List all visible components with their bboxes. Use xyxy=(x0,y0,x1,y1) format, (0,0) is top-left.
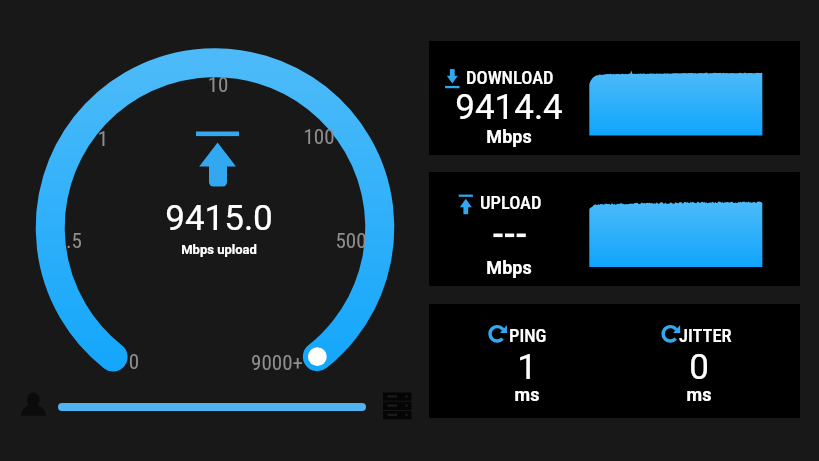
staticText: Mbps xyxy=(429,126,589,147)
staticText: 1 xyxy=(467,347,587,388)
staticText: ms xyxy=(639,384,759,405)
staticText: UPLOAD xyxy=(480,192,542,214)
staticText: DOWNLOAD xyxy=(466,67,554,89)
staticText: JITTER xyxy=(679,325,732,347)
staticText: 9414.4 xyxy=(429,87,589,128)
staticText: 100 xyxy=(159,125,479,150)
staticText: 0 xyxy=(639,347,759,388)
staticText: 0 xyxy=(0,350,294,375)
button[interactable]: Results xyxy=(379,388,415,422)
button[interactable]: PING xyxy=(429,304,800,418)
staticText: 500 xyxy=(191,229,511,254)
staticText: Mbps upload xyxy=(59,242,379,257)
button[interactable]: UPLOAD xyxy=(429,172,800,286)
staticText: PING xyxy=(509,325,547,347)
staticText: .5 xyxy=(0,229,234,254)
button[interactable]: DOWNLOAD xyxy=(429,41,800,155)
staticText: ms xyxy=(467,384,587,405)
staticText: 10 xyxy=(58,73,378,98)
staticText: 1 xyxy=(0,127,263,152)
staticText: 9415.0 xyxy=(59,198,379,239)
button[interactable]: Account xyxy=(12,386,54,424)
staticText: 9000+ xyxy=(117,351,437,376)
staticText: Mbps xyxy=(429,257,589,278)
